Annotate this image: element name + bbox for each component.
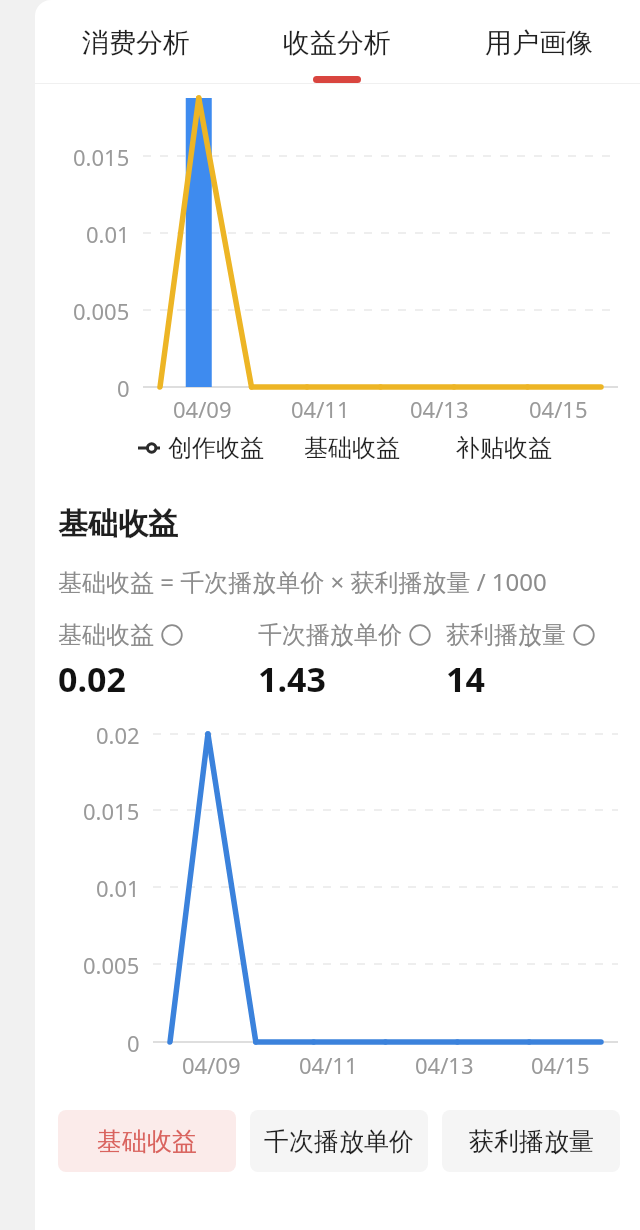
staticText: 获利播放量 <box>469 1126 594 1157</box>
staticText: 0.015 <box>73 142 130 172</box>
staticText: 基础收益 <box>58 505 178 543</box>
button[interactable]: 基础收益 <box>58 620 258 702</box>
button[interactable]: 基础收益 <box>58 1110 236 1172</box>
button[interactable]: 补贴收益 <box>428 433 580 463</box>
staticText: 基础收益 <box>304 433 400 463</box>
staticText: 0.02 <box>96 720 140 750</box>
staticText: 用户画像 <box>485 26 593 60</box>
staticText: 0.015 <box>83 796 140 826</box>
button[interactable]: 获利播放量 <box>446 620 620 702</box>
staticText: 获利播放量 <box>446 620 566 650</box>
staticText: 0 <box>127 1028 140 1058</box>
staticText: 千次播放单价 <box>264 1126 414 1157</box>
staticText: 0.005 <box>73 296 130 326</box>
staticText: 消费分析 <box>82 26 190 60</box>
button[interactable]: 用户画像 <box>438 0 640 88</box>
staticText: 收益分析 <box>283 26 391 60</box>
button[interactable]: 千次播放单价 <box>250 1110 428 1172</box>
other: 获利播放量 说明 <box>573 624 595 646</box>
button[interactable]: 消费分析 <box>35 0 236 88</box>
staticText: 04/11 <box>291 394 350 424</box>
staticText: 04/09 <box>173 394 232 424</box>
staticText: 04/15 <box>529 394 588 424</box>
staticText: 基础收益 <box>58 620 154 650</box>
staticText: 1.43 <box>258 656 326 702</box>
staticText: 0 <box>117 373 130 403</box>
button[interactable]: 千次播放单价 <box>258 620 446 702</box>
staticText: 千次播放单价 <box>258 620 402 650</box>
staticText: 04/09 <box>182 1050 241 1080</box>
button[interactable]: 收益分析 <box>236 0 438 88</box>
other: 千次播放单价 说明 <box>409 624 431 646</box>
staticText: 04/13 <box>410 394 469 424</box>
staticText: 补贴收益 <box>456 433 552 463</box>
other: 基础收益 说明 <box>161 624 183 646</box>
button[interactable]: 获利播放量 <box>442 1110 620 1172</box>
staticText: 04/15 <box>531 1050 590 1080</box>
staticText: 0.01 <box>96 873 140 903</box>
staticText: 基础收益 = 千次播放单价 × 获利播放量 / 1000 <box>58 565 547 598</box>
staticText: 04/13 <box>415 1050 474 1080</box>
staticText: 0.005 <box>83 950 140 980</box>
staticText: 14 <box>446 656 485 702</box>
staticText: 0.02 <box>58 656 126 702</box>
staticText: 基础收益 <box>97 1126 197 1157</box>
button[interactable]: 创作收益 <box>125 433 276 463</box>
staticText: 创作收益 <box>168 433 264 463</box>
button[interactable]: 基础收益 <box>276 433 428 463</box>
staticText: 0.01 <box>86 219 130 249</box>
staticText: 04/11 <box>299 1050 358 1080</box>
